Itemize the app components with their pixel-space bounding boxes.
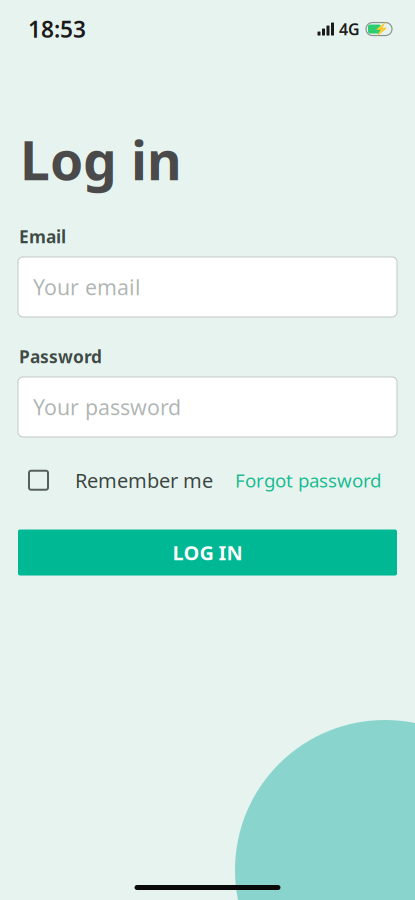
staticText: ⚡ — [374, 22, 389, 36]
staticText: Log in — [20, 124, 182, 195]
staticText: Your password — [33, 393, 181, 421]
button[interactable]: LOG IN — [18, 529, 397, 575]
staticText: Password — [19, 345, 102, 368]
staticText: 18:53 — [28, 14, 86, 44]
staticText: Email — [19, 225, 66, 248]
staticText: Forgot password — [235, 468, 381, 493]
staticText: Your email — [33, 273, 141, 301]
staticText: LOG IN — [172, 539, 242, 566]
button[interactable]: Remember me — [29, 461, 213, 500]
staticText: 4G — [339, 18, 360, 40]
staticText: Remember me — [75, 467, 213, 494]
button[interactable]: Forgot password — [235, 462, 381, 499]
